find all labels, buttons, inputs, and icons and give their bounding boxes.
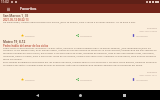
staticText: Favoritos — [20, 6, 37, 11]
staticText: Evangelio 2021-05-12 08:22 — [3, 27, 157, 33]
button[interactable]: San Marcos 1, 35 — [0, 13, 160, 39]
button[interactable]: Open navigation menu — [4, 5, 12, 13]
button[interactable]: Mateo 19, 8-12 — [0, 39, 160, 82]
button[interactable]: Back — [30, 90, 44, 100]
button[interactable]: Favorito — [20, 77, 36, 82]
staticText: Compartir — [80, 78, 92, 81]
staticText: Mateo 19, 8-12 — [3, 40, 26, 44]
button[interactable]: Home — [73, 90, 87, 100]
button[interactable]: Compartir — [75, 33, 93, 38]
staticText: Anotación — [136, 34, 148, 37]
staticText: Compartir — [80, 34, 92, 37]
button[interactable]: Anotación — [131, 77, 149, 82]
staticText: Evangelio 2021-04-02 10:11 — [3, 71, 157, 77]
button[interactable]: Anotación — [131, 33, 149, 38]
staticText: Favorito — [25, 78, 35, 81]
button[interactable]: Favorito — [20, 33, 36, 38]
staticText: Anotación — [136, 78, 148, 81]
staticText: 2021-05-12 08:22:13 — [3, 18, 29, 22]
staticText: Pedro tomó en ese entonces la palabra y … — [3, 46, 157, 67]
button[interactable]: Compartir — [75, 77, 93, 82]
staticText: Pedro habla del amor de los ciclos — [3, 44, 49, 48]
staticText: San Marcos 1, 35 — [3, 14, 29, 18]
button[interactable]: Recent apps — [117, 90, 131, 100]
staticText: De madrugada, cuando todavía estaba muy … — [3, 20, 136, 23]
staticText: Favorito — [25, 34, 35, 37]
staticText: 11:02 — [1, 0, 9, 4]
